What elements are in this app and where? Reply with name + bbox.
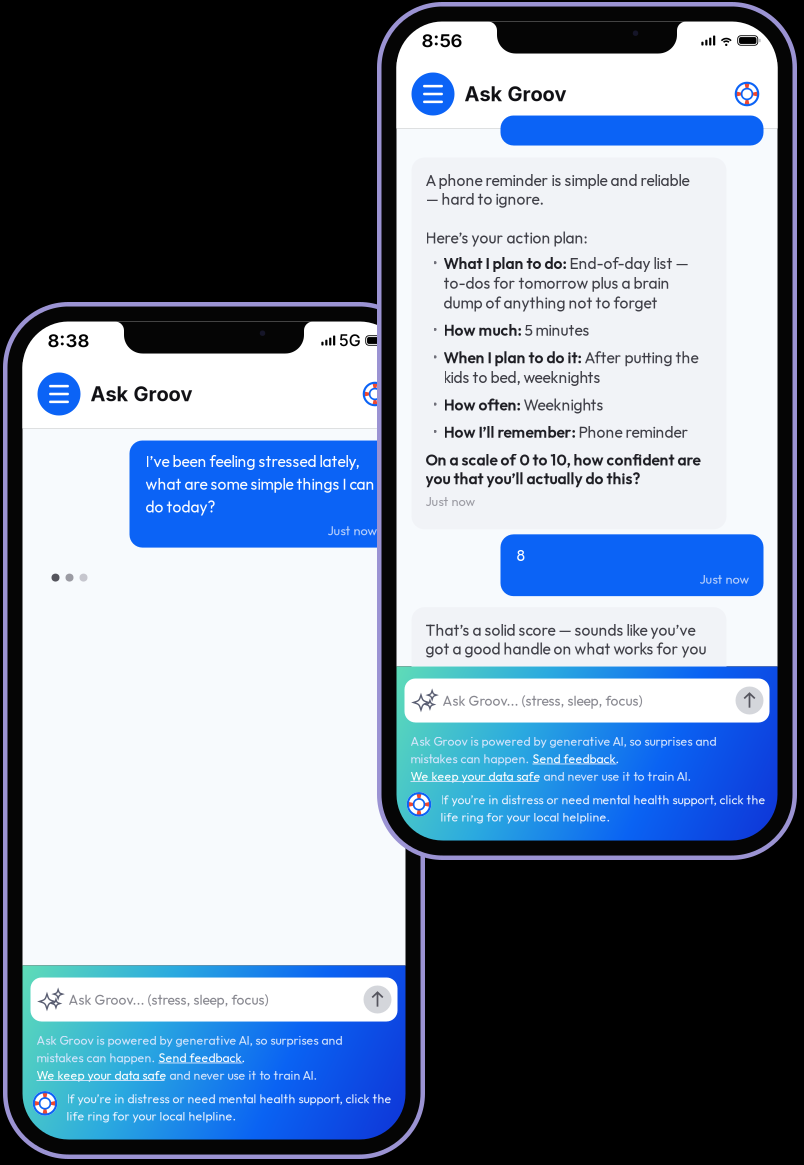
staticText: On a scale of 0 to 10, how confident are: [425, 450, 700, 470]
button[interactable]: Get help: [362, 381, 387, 406]
staticText: Send feedback.: [532, 751, 619, 766]
button[interactable]: If you’re in distress or need mental hea…: [396, 792, 775, 825]
button[interactable]: Send: [363, 985, 391, 1013]
staticText: 8: [516, 545, 525, 565]
staticText: and never use it to train AI.: [540, 768, 691, 784]
staticText: After putting the: [581, 348, 698, 367]
button[interactable]: We keep your data safe: [410, 768, 540, 784]
staticText: Here’s your action plan:: [425, 228, 587, 247]
staticText: life ring for your local helpline.: [66, 1108, 236, 1124]
button[interactable]: Menu: [37, 372, 80, 415]
staticText: I’ve been feeling stressed lately,: [145, 451, 359, 471]
staticText: 8:56: [421, 29, 462, 52]
staticText: Just now: [425, 493, 475, 509]
staticText: How often:: [443, 395, 520, 414]
staticText: •: [432, 253, 437, 273]
staticText: 8:38: [47, 329, 89, 352]
staticText: Ask Groov is powered by generative AI, s…: [410, 733, 716, 749]
staticText: Ask Groov: [90, 382, 192, 406]
staticText: If you’re in distress or need mental hea…: [440, 792, 765, 807]
staticText: got a good handle on what works for you: [425, 639, 706, 658]
button[interactable]: Ask Groov... (stress, sleep, focus): [30, 977, 397, 1021]
staticText: Phone reminder: [575, 422, 688, 442]
staticText: That’s a solid score — sounds like you’v…: [425, 620, 695, 640]
staticText: to-dos for tomorrow plus a brain: [443, 273, 669, 293]
button[interactable]: We keep your data safe: [36, 1067, 166, 1083]
button[interactable]: If you’re in distress or need mental hea…: [22, 1091, 403, 1124]
staticText: •: [432, 395, 437, 414]
staticText: you that you’ll actually do this?: [425, 469, 640, 488]
staticText: Ask Groov... (stress, sleep, focus): [442, 692, 642, 709]
staticText: How much:: [443, 320, 521, 340]
staticText: •: [432, 348, 437, 367]
staticText: mistakes can happen.: [36, 1050, 158, 1065]
staticText: We keep your data safe: [410, 768, 540, 784]
staticText: Weeknights: [520, 395, 603, 414]
staticText: Just now: [327, 522, 377, 539]
button[interactable]: Send feedback.: [532, 751, 619, 766]
button[interactable]: Send: [735, 686, 763, 714]
button[interactable]: Ask Groov... (stress, sleep, focus): [404, 678, 769, 722]
staticText: Ask Groov... (stress, sleep, focus): [68, 991, 268, 1008]
staticText: If you’re in distress or need mental hea…: [66, 1091, 391, 1106]
staticText: •: [432, 422, 437, 442]
staticText: — hard to ignore.: [425, 189, 544, 209]
staticText: What I plan to do:: [443, 253, 566, 273]
button[interactable]: Send feedback.: [158, 1050, 245, 1065]
staticText: mistakes can happen.: [410, 751, 532, 766]
staticText: what are some simple things I can: [145, 474, 374, 494]
staticText: How I’ll remember:: [443, 422, 575, 442]
staticText: life ring for your local helpline.: [440, 809, 610, 825]
staticText: •: [432, 320, 437, 340]
staticText: When I plan to do it:: [443, 348, 581, 367]
staticText: and never use it to train AI.: [166, 1067, 317, 1083]
staticText: 5G: [339, 331, 361, 350]
staticText: dump of anything not to forget: [443, 293, 657, 312]
staticText: Send feedback.: [158, 1050, 245, 1065]
staticText: do today?: [145, 497, 215, 516]
staticText: End-of-day list —: [566, 253, 688, 273]
staticText: Ask Groov: [464, 82, 566, 106]
button[interactable]: Get help: [734, 81, 759, 106]
staticText: Ask Groov is powered by generative AI, s…: [36, 1032, 342, 1048]
staticText: Just now: [699, 571, 749, 587]
staticText: We keep your data safe: [36, 1067, 166, 1083]
staticText: 5 minutes: [521, 320, 589, 340]
button[interactable]: Menu: [411, 72, 454, 115]
staticText: kids to bed, weeknights: [443, 367, 600, 387]
staticText: A phone reminder is simple and reliable: [425, 170, 689, 190]
